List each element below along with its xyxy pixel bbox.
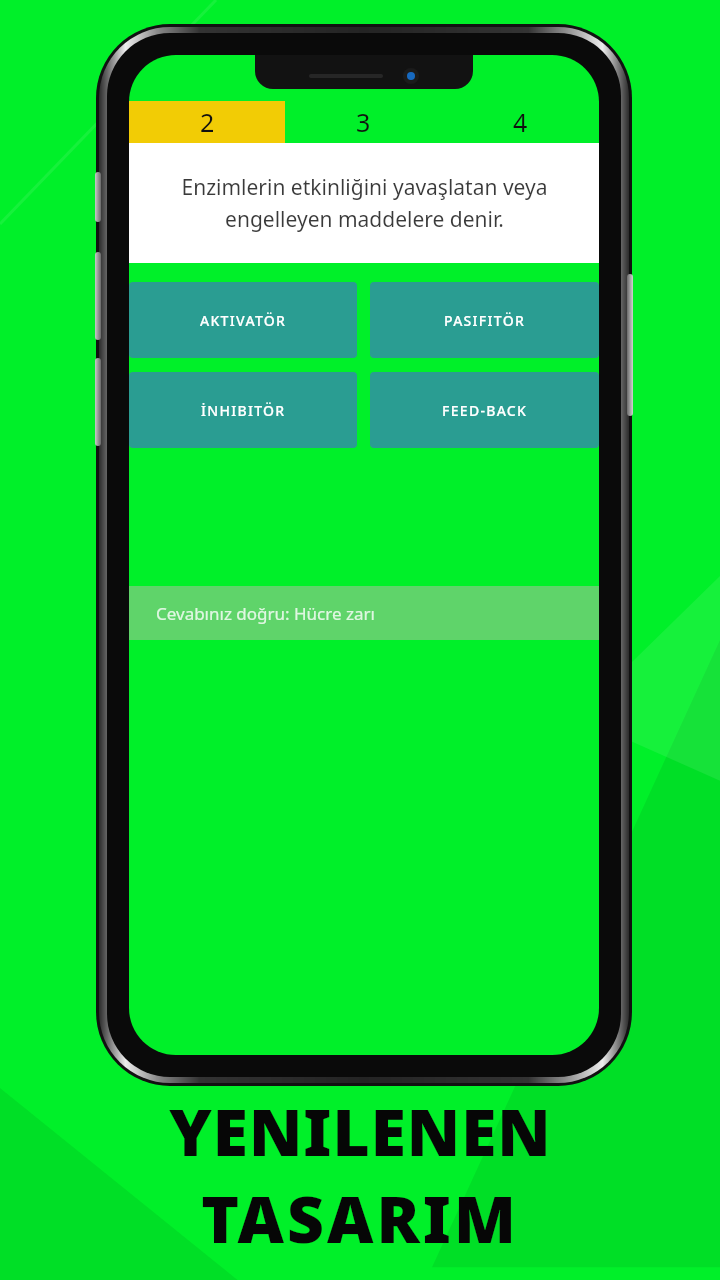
staticText: 4 bbox=[513, 105, 528, 139]
button[interactable]: İNHIBITÖR bbox=[129, 372, 357, 448]
button[interactable]: Sonuç bildirimi bbox=[129, 586, 599, 640]
button[interactable]: FEED-BACK bbox=[370, 372, 599, 448]
staticText: AKTIVATÖR bbox=[200, 311, 287, 330]
staticText: 2 bbox=[200, 105, 215, 139]
staticText: Cevabınız doğru: Hücre zarı bbox=[156, 602, 375, 625]
staticText: FEED-BACK bbox=[442, 401, 528, 420]
staticText: Enzimlerin etkinliğini yavaşlatan veya e… bbox=[181, 173, 548, 233]
staticText: 3 bbox=[356, 105, 371, 139]
button[interactable]: PASIFITÖR bbox=[370, 282, 599, 358]
staticText: İNHIBITÖR bbox=[201, 401, 286, 420]
button[interactable]: 3 bbox=[285, 101, 442, 143]
button[interactable]: AKTIVATÖR bbox=[129, 282, 357, 358]
button[interactable]: 4 bbox=[442, 101, 599, 143]
button[interactable]: 2 bbox=[129, 101, 285, 143]
staticText: YENILENEN bbox=[169, 1088, 552, 1175]
staticText: TASARIM bbox=[201, 1175, 519, 1262]
staticText: PASIFITÖR bbox=[444, 311, 526, 330]
